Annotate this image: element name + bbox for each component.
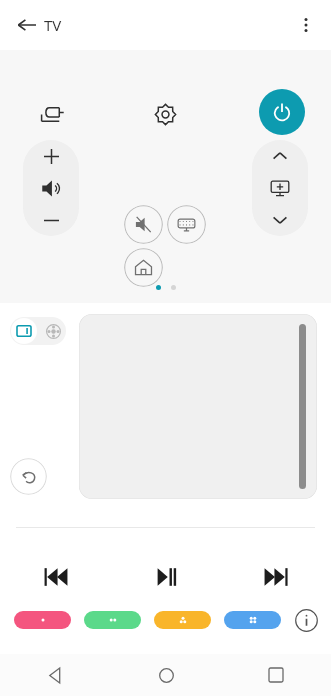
button[interactable]: D-pad mode [39,317,66,345]
button[interactable]: Yellow button [154,611,211,629]
button[interactable]: Channel list [252,172,308,204]
button[interactable]: Mute [124,205,163,244]
button[interactable]: Previous [0,554,111,600]
button[interactable]: Back [10,458,47,495]
button[interactable]: Next [221,554,331,600]
button[interactable]: Home [111,654,221,696]
button[interactable]: Information [291,605,321,635]
button[interactable]: Power [259,89,305,135]
button[interactable]: More options [287,6,325,44]
button[interactable]: Volume down [23,204,79,236]
button[interactable]: Recents [221,654,331,696]
button[interactable]: Home [124,248,163,287]
button[interactable]: Channel up [252,140,308,172]
button[interactable]: Volume [23,172,79,204]
button[interactable]: Back [0,654,111,696]
button[interactable]: Back [8,6,46,44]
button[interactable]: Channel down [252,204,308,236]
button[interactable]: Green button [84,611,141,629]
button[interactable] [79,314,317,499]
button[interactable]: Volume up [23,140,79,172]
button[interactable]: Blue button [224,611,281,629]
button[interactable]: Settings [143,92,187,136]
button[interactable]: Play pause [111,554,221,600]
button[interactable]: Input source [30,92,74,136]
button[interactable]: Keyboard [167,205,206,244]
staticText: TV [44,15,62,35]
button[interactable]: Touchpad mode [11,318,37,344]
button[interactable]: Red button [14,611,71,629]
